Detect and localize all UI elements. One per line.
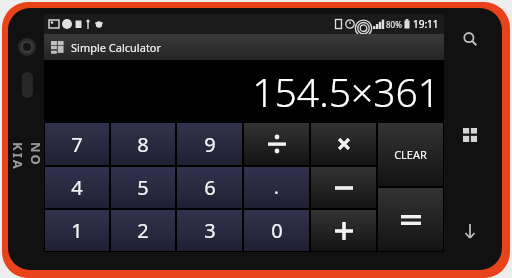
button[interactable]: 4 xyxy=(45,167,109,208)
staticText: 0 xyxy=(271,217,283,244)
staticText: 5 xyxy=(137,174,149,201)
button[interactable]: 2 xyxy=(111,210,175,251)
staticText: . xyxy=(274,175,279,200)
staticText: 19:11 xyxy=(413,17,439,31)
staticText: 3 xyxy=(204,217,216,244)
staticText: NOKIA xyxy=(9,142,45,176)
button[interactable]: CLEAR xyxy=(378,123,443,186)
button[interactable]: 3 xyxy=(177,210,242,251)
button[interactable]: Plus xyxy=(311,210,376,251)
button[interactable]: Minus xyxy=(311,167,376,208)
staticText: 9 xyxy=(204,131,216,158)
button[interactable]: 1 xyxy=(45,210,109,251)
staticText: 2 xyxy=(137,217,149,244)
button[interactable]: Divide xyxy=(244,123,309,165)
button[interactable]: Back xyxy=(457,218,483,244)
button[interactable]: Search xyxy=(457,26,483,52)
staticText: 6 xyxy=(204,174,216,201)
button[interactable]: 5 xyxy=(111,167,175,208)
staticText: 4 xyxy=(71,174,83,201)
button[interactable]: Start xyxy=(457,122,483,148)
button[interactable]: Multiply xyxy=(311,123,376,165)
staticText: 154.5×361 xyxy=(252,65,440,118)
button[interactable]: . xyxy=(244,167,309,208)
button[interactable]: 7 xyxy=(45,123,109,165)
button[interactable]: 6 xyxy=(177,167,242,208)
staticText: 7 xyxy=(71,131,83,158)
button[interactable]: 9 xyxy=(177,123,242,165)
button[interactable]: 8 xyxy=(111,123,175,165)
staticText: Simple Calculator xyxy=(71,40,162,55)
staticText: CLEAR xyxy=(394,147,427,162)
staticText: 80% xyxy=(386,19,402,30)
button[interactable]: Equals xyxy=(378,188,443,251)
staticText: 1 xyxy=(71,217,83,244)
button[interactable]: 0 xyxy=(244,210,309,251)
staticText: 8 xyxy=(137,131,149,158)
